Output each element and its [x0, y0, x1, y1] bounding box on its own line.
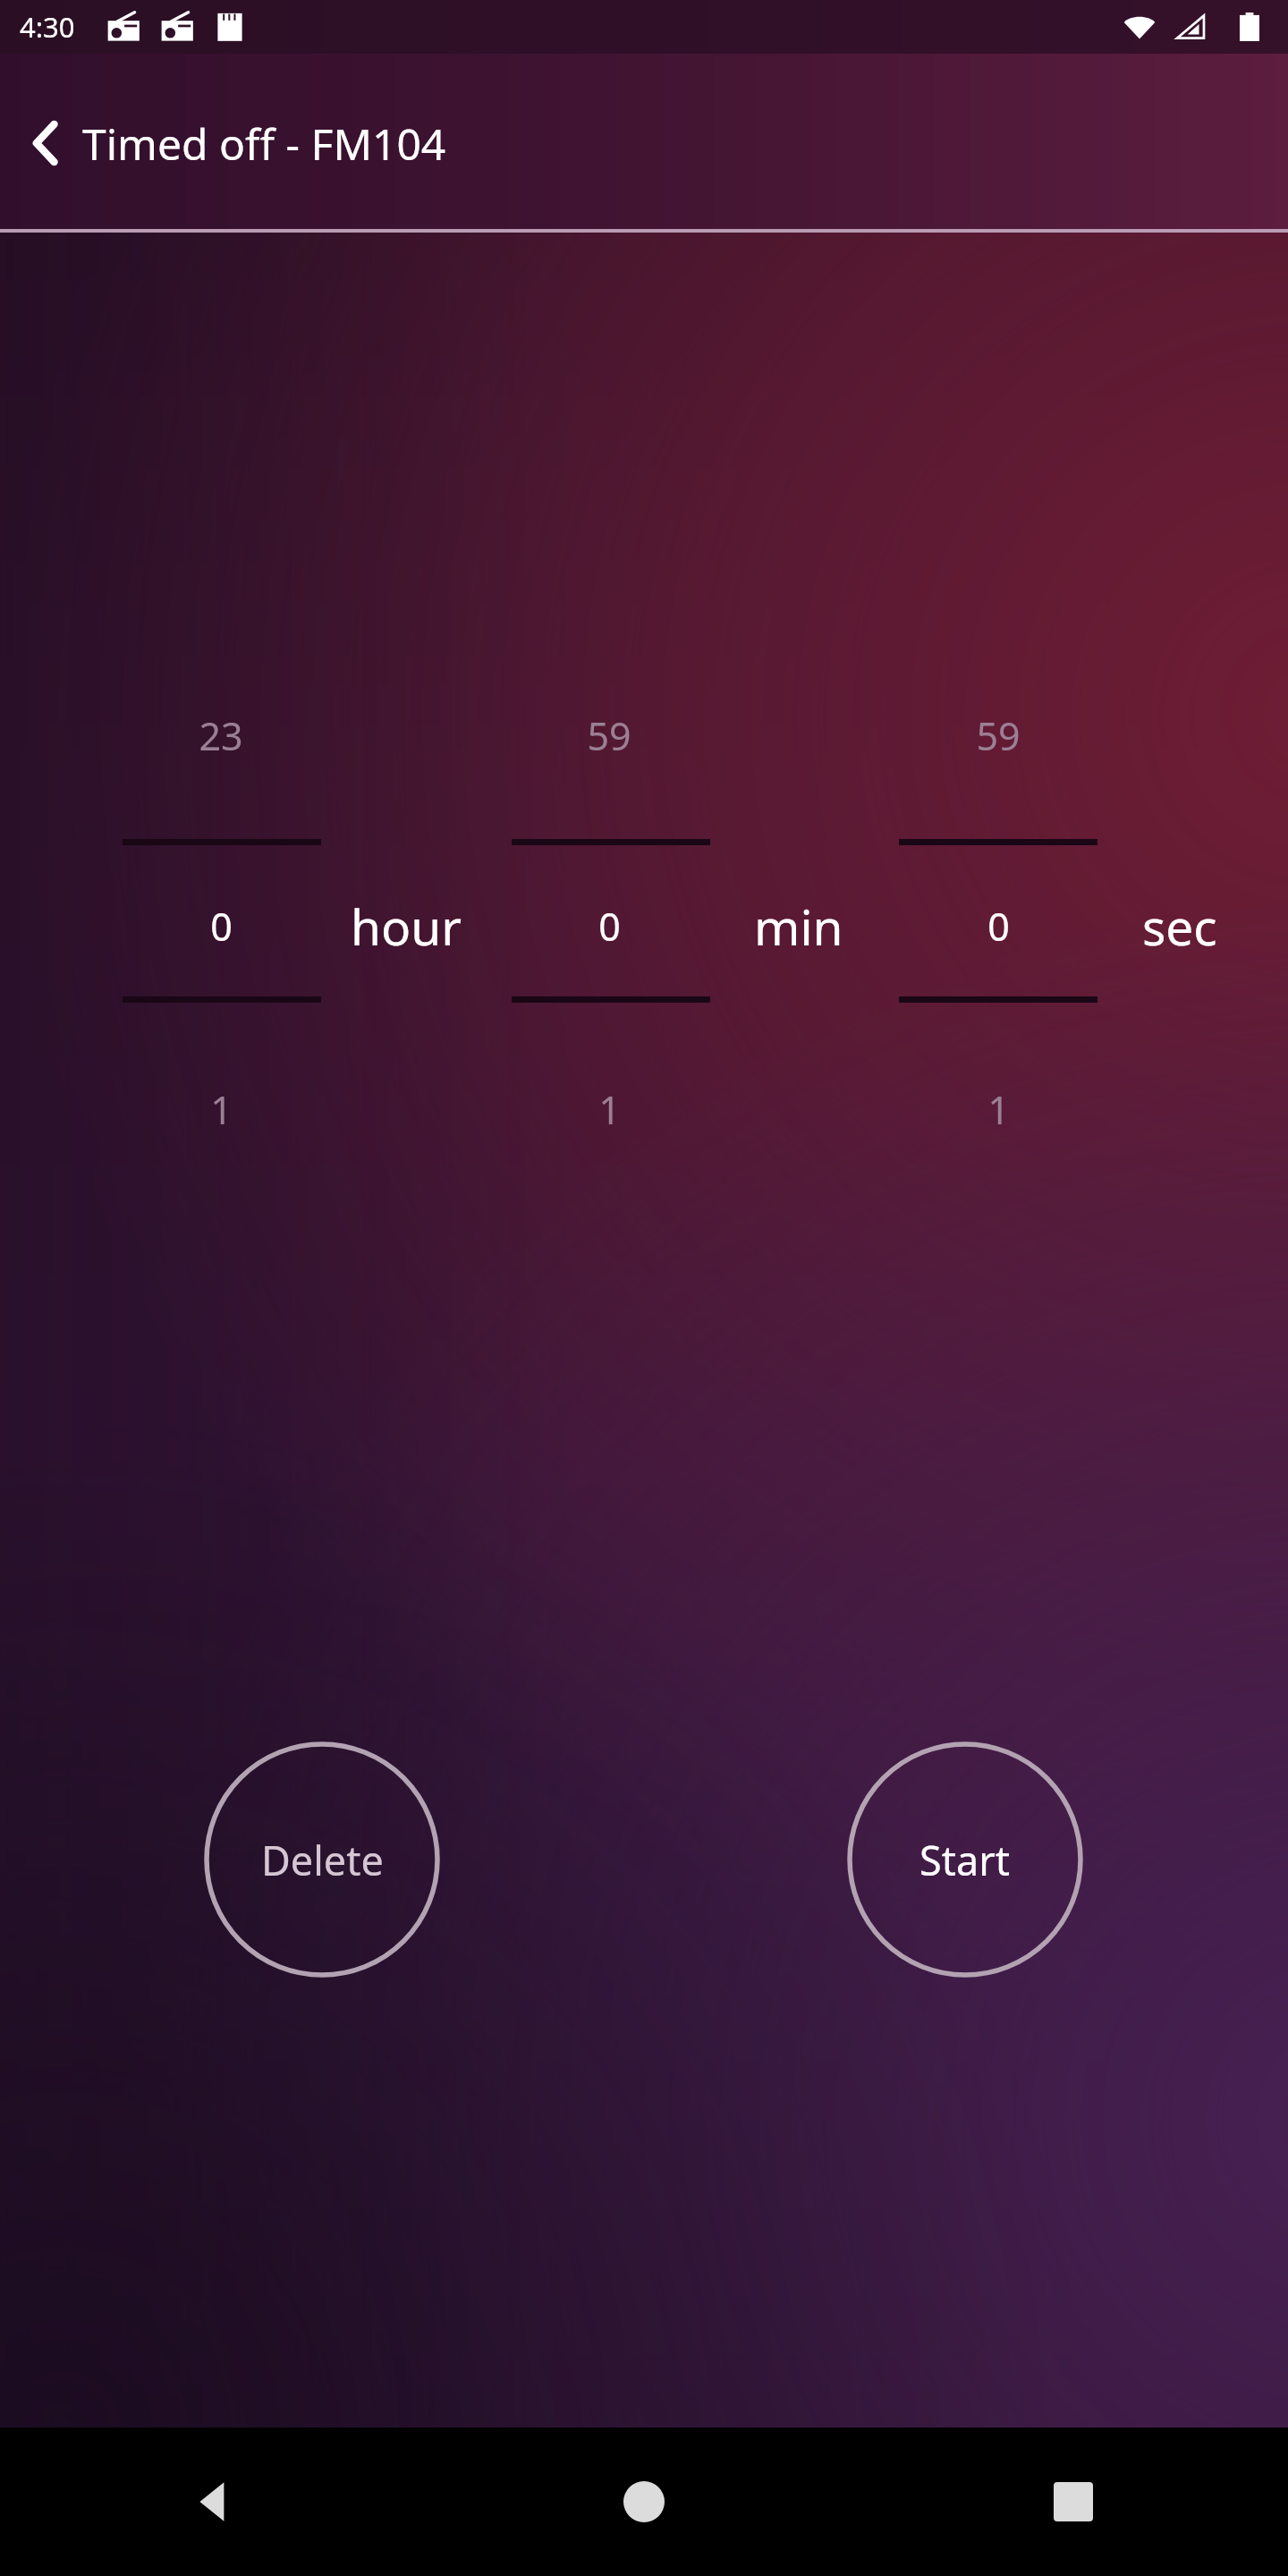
button[interactable]: Home	[429, 2428, 859, 2576]
button[interactable]: Back	[0, 2428, 429, 2576]
button[interactable]: 1	[510, 1079, 708, 1140]
button[interactable]: Delete	[203, 1741, 441, 1979]
staticText: 59	[976, 709, 1021, 762]
button[interactable]: 23	[122, 705, 320, 766]
staticText: 4:30	[20, 8, 75, 46]
staticText: 23	[199, 709, 243, 762]
staticText: hour	[351, 893, 462, 957]
button[interactable]: 59	[899, 705, 1097, 766]
staticText: 1	[210, 1083, 233, 1136]
button[interactable]: 0	[122, 895, 320, 956]
staticText: 0	[598, 900, 621, 953]
button[interactable]: 0	[899, 895, 1097, 956]
button[interactable]: 1	[122, 1079, 320, 1140]
staticText: Timed off - FM104	[82, 114, 446, 173]
staticText: Start	[919, 1833, 1011, 1887]
button[interactable]: 59	[510, 705, 708, 766]
staticText: 0	[987, 900, 1010, 953]
button[interactable]: Back	[13, 110, 79, 176]
staticText: sec	[1142, 893, 1217, 957]
button[interactable]: Recent apps	[859, 2428, 1288, 2576]
staticText: 1	[987, 1083, 1010, 1136]
staticText: 1	[598, 1083, 621, 1136]
button[interactable]: 1	[899, 1079, 1097, 1140]
staticText: min	[754, 893, 843, 957]
staticText: Delete	[261, 1833, 384, 1887]
staticText: 0	[210, 900, 233, 953]
button[interactable]: Start	[846, 1741, 1084, 1979]
button[interactable]: 0	[510, 895, 708, 956]
staticText: 59	[587, 709, 631, 762]
